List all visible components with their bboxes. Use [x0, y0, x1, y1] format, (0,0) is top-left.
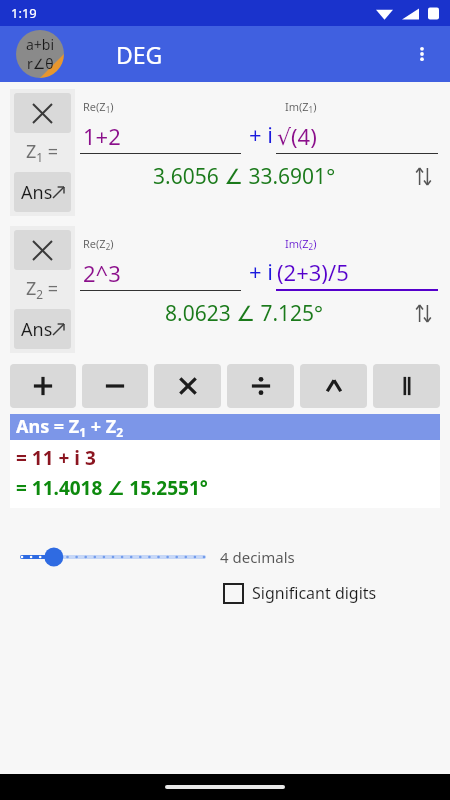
- staticText: 4 decimals: [220, 547, 295, 567]
- staticText: + i: [249, 256, 273, 286]
- button[interactable]: Significant digits: [224, 577, 377, 609]
- button[interactable]: Decimals slider: [18, 542, 208, 572]
- staticText: Z1 =: [26, 139, 59, 166]
- button[interactable]: Ans = Z1 + Z2: [10, 414, 440, 440]
- staticText: a+bi: [26, 35, 55, 54]
- staticText: Im(Z1): [285, 99, 317, 116]
- button[interactable]: 1+2: [80, 121, 241, 154]
- button[interactable]: App icon: [16, 30, 64, 78]
- button[interactable]: times: [154, 364, 221, 408]
- staticText: Re(Z2): [83, 236, 114, 253]
- button[interactable]: Swap: [408, 161, 438, 191]
- button[interactable]: Swap: [408, 298, 438, 328]
- staticText: √(4): [277, 121, 317, 151]
- staticText: 1:19: [11, 4, 37, 22]
- staticText: 3.6056 ∠ 33.6901°: [153, 162, 336, 191]
- staticText: Ans: [21, 180, 53, 205]
- button[interactable]: pow: [300, 364, 367, 408]
- staticText: Ans = Z1 + Z2: [16, 414, 124, 440]
- button[interactable]: Clear Z1: [14, 93, 71, 133]
- button[interactable]: Ans: [14, 309, 71, 349]
- button[interactable]: Clear Z2: [14, 230, 71, 270]
- button[interactable]: div: [227, 364, 294, 408]
- button[interactable]: par: [373, 364, 440, 408]
- staticText: Significant digits: [252, 582, 377, 604]
- staticText: (2+3)/5: [277, 257, 349, 287]
- staticText: = 11 + i 3: [16, 445, 96, 471]
- staticText: = 11.4018 ∠ 15.2551°: [16, 475, 208, 501]
- staticText: 1+2: [83, 121, 121, 151]
- staticText: DEG: [116, 39, 163, 70]
- staticText: Im(Z2): [285, 236, 317, 253]
- button[interactable]: Ans: [14, 172, 71, 212]
- staticText: 2^3: [83, 258, 121, 288]
- button[interactable]: √(4): [276, 121, 438, 154]
- button[interactable]: plus: [10, 364, 76, 408]
- staticText: Re(Z1): [83, 99, 114, 116]
- button[interactable]: minus: [82, 364, 148, 408]
- staticText: 8.0623 ∠ 7.125°: [165, 299, 324, 328]
- staticText: Z2 =: [26, 276, 59, 303]
- button[interactable]: (2+3)/5: [276, 257, 438, 291]
- button[interactable]: 2^3: [80, 258, 241, 291]
- staticText: Ans: [21, 317, 53, 342]
- staticText: r∠θ: [27, 54, 54, 73]
- staticText: + i: [249, 119, 273, 149]
- button[interactable]: More options: [400, 32, 444, 76]
